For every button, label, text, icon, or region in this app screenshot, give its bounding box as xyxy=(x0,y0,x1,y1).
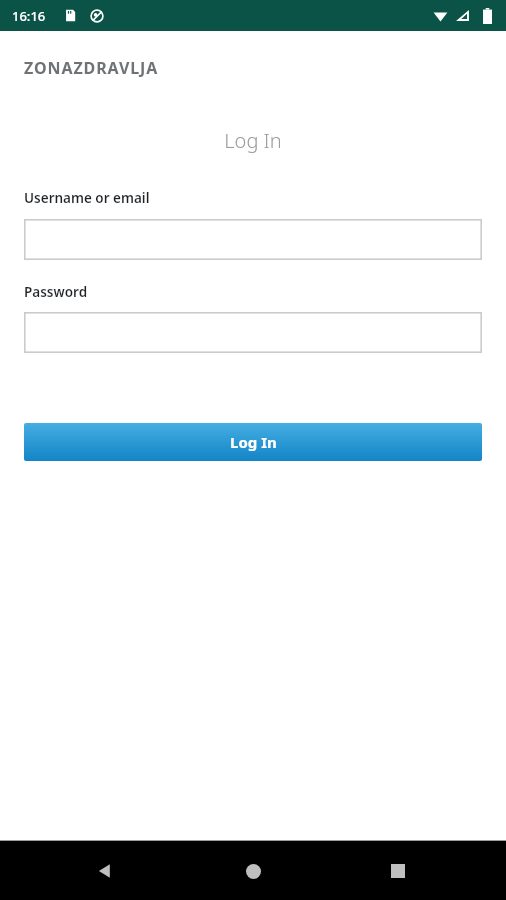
button[interactable]: Home xyxy=(236,854,270,888)
button[interactable]: Log In xyxy=(24,423,482,461)
button[interactable] xyxy=(24,312,482,353)
staticText: ZONAZDRAVLJA xyxy=(24,57,159,79)
button[interactable]: Back xyxy=(88,854,122,888)
staticText: Log In xyxy=(230,432,277,452)
staticText: Username or email xyxy=(24,189,150,207)
staticText: 16:16 xyxy=(12,7,46,25)
button[interactable]: Recent apps xyxy=(381,854,415,888)
button[interactable] xyxy=(24,219,482,260)
staticText: Password xyxy=(24,283,88,301)
staticText: Log In xyxy=(0,127,506,154)
